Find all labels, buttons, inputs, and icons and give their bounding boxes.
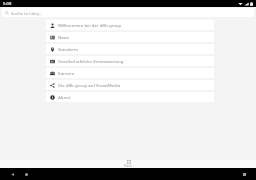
staticText: About — [58, 94, 71, 100]
button[interactable]: Suche in Libry... — [2, 8, 254, 17]
button[interactable]: News — [46, 32, 214, 42]
staticText: Die dBb group auf SocialMedia — [58, 82, 121, 88]
staticText: Willkommen bei der dBb group — [58, 22, 122, 28]
button[interactable]: About — [46, 92, 214, 102]
staticText: Suche in Libry... — [11, 10, 43, 16]
button[interactable]: Home — [22, 170, 30, 178]
button[interactable]: Karriere — [46, 68, 214, 78]
button[interactable]: Die dBb group auf SocialMedia — [46, 80, 214, 90]
staticText: Menu — [124, 164, 133, 168]
staticText: Gesellschaftliche Verantwortung — [58, 58, 124, 64]
staticText: 5:08 — [3, 1, 12, 7]
button[interactable]: Back — [8, 170, 16, 178]
button[interactable]: Standorte — [46, 44, 214, 54]
staticText: Karriere — [58, 70, 75, 76]
staticText: News — [58, 34, 70, 40]
button[interactable]: Willkommen bei der dBb group — [46, 20, 214, 30]
button[interactable]: Recent apps — [240, 170, 248, 178]
button[interactable]: Menu — [121, 160, 136, 168]
staticText: Standorte — [58, 46, 78, 52]
button[interactable]: Gesellschaftliche Verantwortung — [46, 56, 214, 66]
